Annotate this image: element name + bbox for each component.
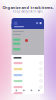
staticText: Organize and track items. <box>2 5 53 10</box>
staticText: Keep every list in sync. <box>12 10 43 13</box>
